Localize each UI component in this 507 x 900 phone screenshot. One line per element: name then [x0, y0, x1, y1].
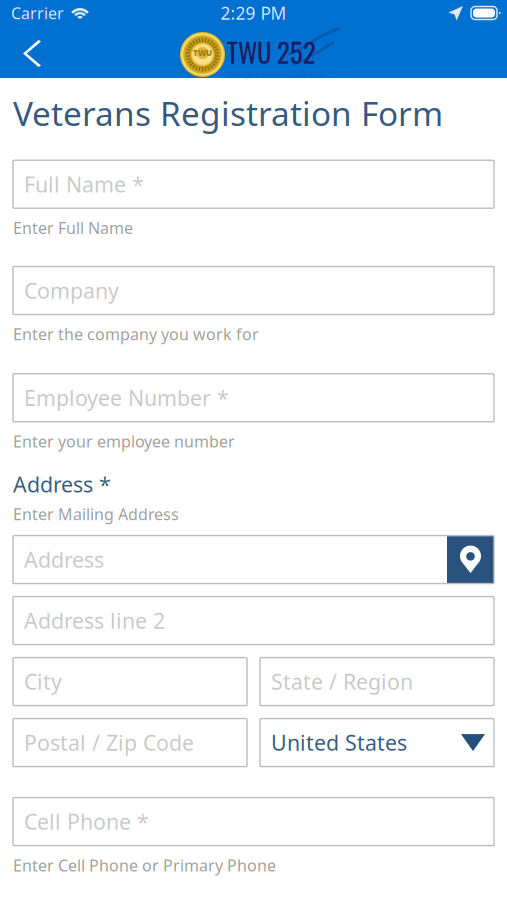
button[interactable]: State / Region: [260, 658, 494, 706]
staticText: Postal / Zip Code: [24, 728, 194, 757]
staticText: Employee Number *: [24, 384, 229, 412]
staticText: Cell Phone *: [24, 807, 149, 836]
staticText: Enter your employee number: [13, 431, 235, 452]
staticText: Veterans Registration Form: [13, 91, 443, 135]
button[interactable]: Back: [0, 26, 60, 77]
staticText: Enter the company you work for: [13, 323, 259, 345]
button[interactable]: United States: [260, 719, 494, 767]
staticText: Enter Cell Phone or Primary Phone: [13, 855, 276, 876]
staticText: Address *: [13, 470, 111, 498]
staticText: Transport Workers Union Local 252: [228, 71, 332, 80]
button[interactable]: Postal / Zip Code: [13, 719, 247, 767]
staticText: Carrier: [11, 2, 64, 24]
button[interactable]: Address line 2: [13, 597, 494, 645]
staticText: City: [24, 667, 62, 696]
staticText: Enter Full Name: [13, 217, 133, 238]
staticText: Address: [24, 545, 104, 574]
staticText: TWU: [193, 48, 212, 58]
staticText: TWU 252: [227, 32, 316, 71]
button[interactable]: Full Name *: [13, 160, 494, 208]
button[interactable]: Company: [13, 266, 494, 314]
staticText: Full Name *: [24, 170, 144, 198]
staticText: State / Region: [271, 667, 413, 696]
staticText: 2:29 PM: [220, 1, 286, 24]
button[interactable]: Use current location: [447, 536, 494, 583]
button[interactable]: City: [13, 658, 247, 706]
staticText: Enter Mailing Address: [13, 503, 179, 524]
button[interactable]: Employee Number *: [13, 374, 494, 422]
staticText: Address line 2: [24, 606, 165, 635]
staticText: Company: [24, 276, 119, 305]
staticText: United States: [271, 728, 407, 757]
button[interactable]: Cell Phone *: [13, 798, 494, 846]
